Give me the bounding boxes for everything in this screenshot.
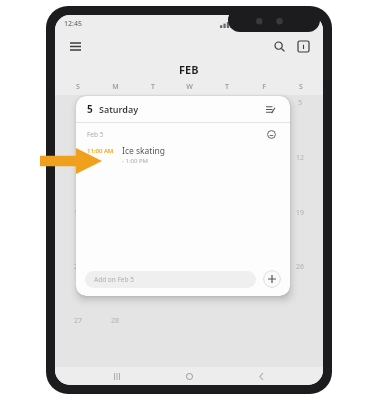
staticText: 11:00 AM	[87, 147, 114, 155]
staticText: 8	[150, 153, 155, 163]
button[interactable]: 20	[59, 259, 97, 313]
staticText: 20	[74, 262, 83, 272]
staticText: 28	[111, 316, 120, 326]
staticText: 13	[74, 208, 83, 218]
button[interactable]: Home	[179, 367, 199, 385]
button[interactable]: Search	[269, 36, 289, 56]
button[interactable]: 7	[97, 150, 134, 205]
staticText: Add on Feb 5	[94, 275, 134, 284]
button[interactable]	[208, 95, 245, 150]
button[interactable]: 21	[97, 259, 134, 313]
button[interactable]: 8	[134, 150, 171, 205]
staticText: T	[225, 82, 229, 92]
button[interactable]: Today	[293, 36, 313, 56]
button[interactable]: 6	[59, 150, 97, 205]
staticText: 12:45	[64, 19, 82, 29]
staticText: S	[76, 82, 80, 92]
button[interactable]: Back	[251, 367, 271, 385]
button[interactable]: 24	[208, 259, 245, 313]
button[interactable]: Menu	[65, 36, 85, 56]
button[interactable]	[97, 95, 134, 150]
button[interactable]: 19	[282, 205, 319, 259]
staticText: 5	[298, 98, 303, 108]
button[interactable]	[134, 95, 171, 150]
button[interactable]	[245, 95, 282, 150]
button[interactable]: 25	[245, 259, 282, 313]
staticText: 19	[296, 208, 305, 218]
button[interactable]: Add on Feb 5	[85, 271, 256, 288]
staticText: 27	[74, 316, 83, 326]
staticText: 12	[296, 153, 305, 163]
staticText: 26	[296, 262, 305, 272]
staticText: 5	[87, 102, 93, 116]
staticText: 23	[185, 262, 194, 272]
button[interactable]: 26	[282, 259, 319, 313]
button[interactable]: 13	[59, 205, 97, 259]
button[interactable]: 5	[282, 95, 319, 150]
staticText: Feb 5	[87, 130, 104, 139]
button[interactable]: 23	[171, 259, 208, 313]
staticText: 24	[222, 262, 231, 272]
button[interactable]: 22	[134, 259, 171, 313]
button[interactable]: Recents	[107, 367, 127, 385]
button[interactable]: 11:00 AM	[76, 145, 290, 171]
staticText: 21	[111, 262, 120, 272]
button[interactable]	[171, 95, 208, 150]
button[interactable]: Stickers	[263, 126, 279, 142]
staticText: - 1:00 PM	[122, 157, 149, 165]
staticText: F	[262, 82, 266, 92]
staticText: FEB	[179, 62, 199, 77]
staticText: Ice skating	[122, 145, 166, 157]
button[interactable]	[59, 95, 97, 150]
button[interactable]: Edit list	[261, 100, 279, 118]
staticText: 22	[148, 262, 157, 272]
staticText: T	[151, 82, 155, 92]
staticText: M	[112, 82, 119, 92]
staticText: S	[299, 82, 303, 92]
staticText: Saturday	[99, 103, 139, 115]
button[interactable]: 28	[97, 313, 134, 367]
button[interactable]: Add event	[263, 270, 281, 288]
staticText: W	[186, 82, 193, 92]
button[interactable]: 12	[282, 150, 319, 205]
